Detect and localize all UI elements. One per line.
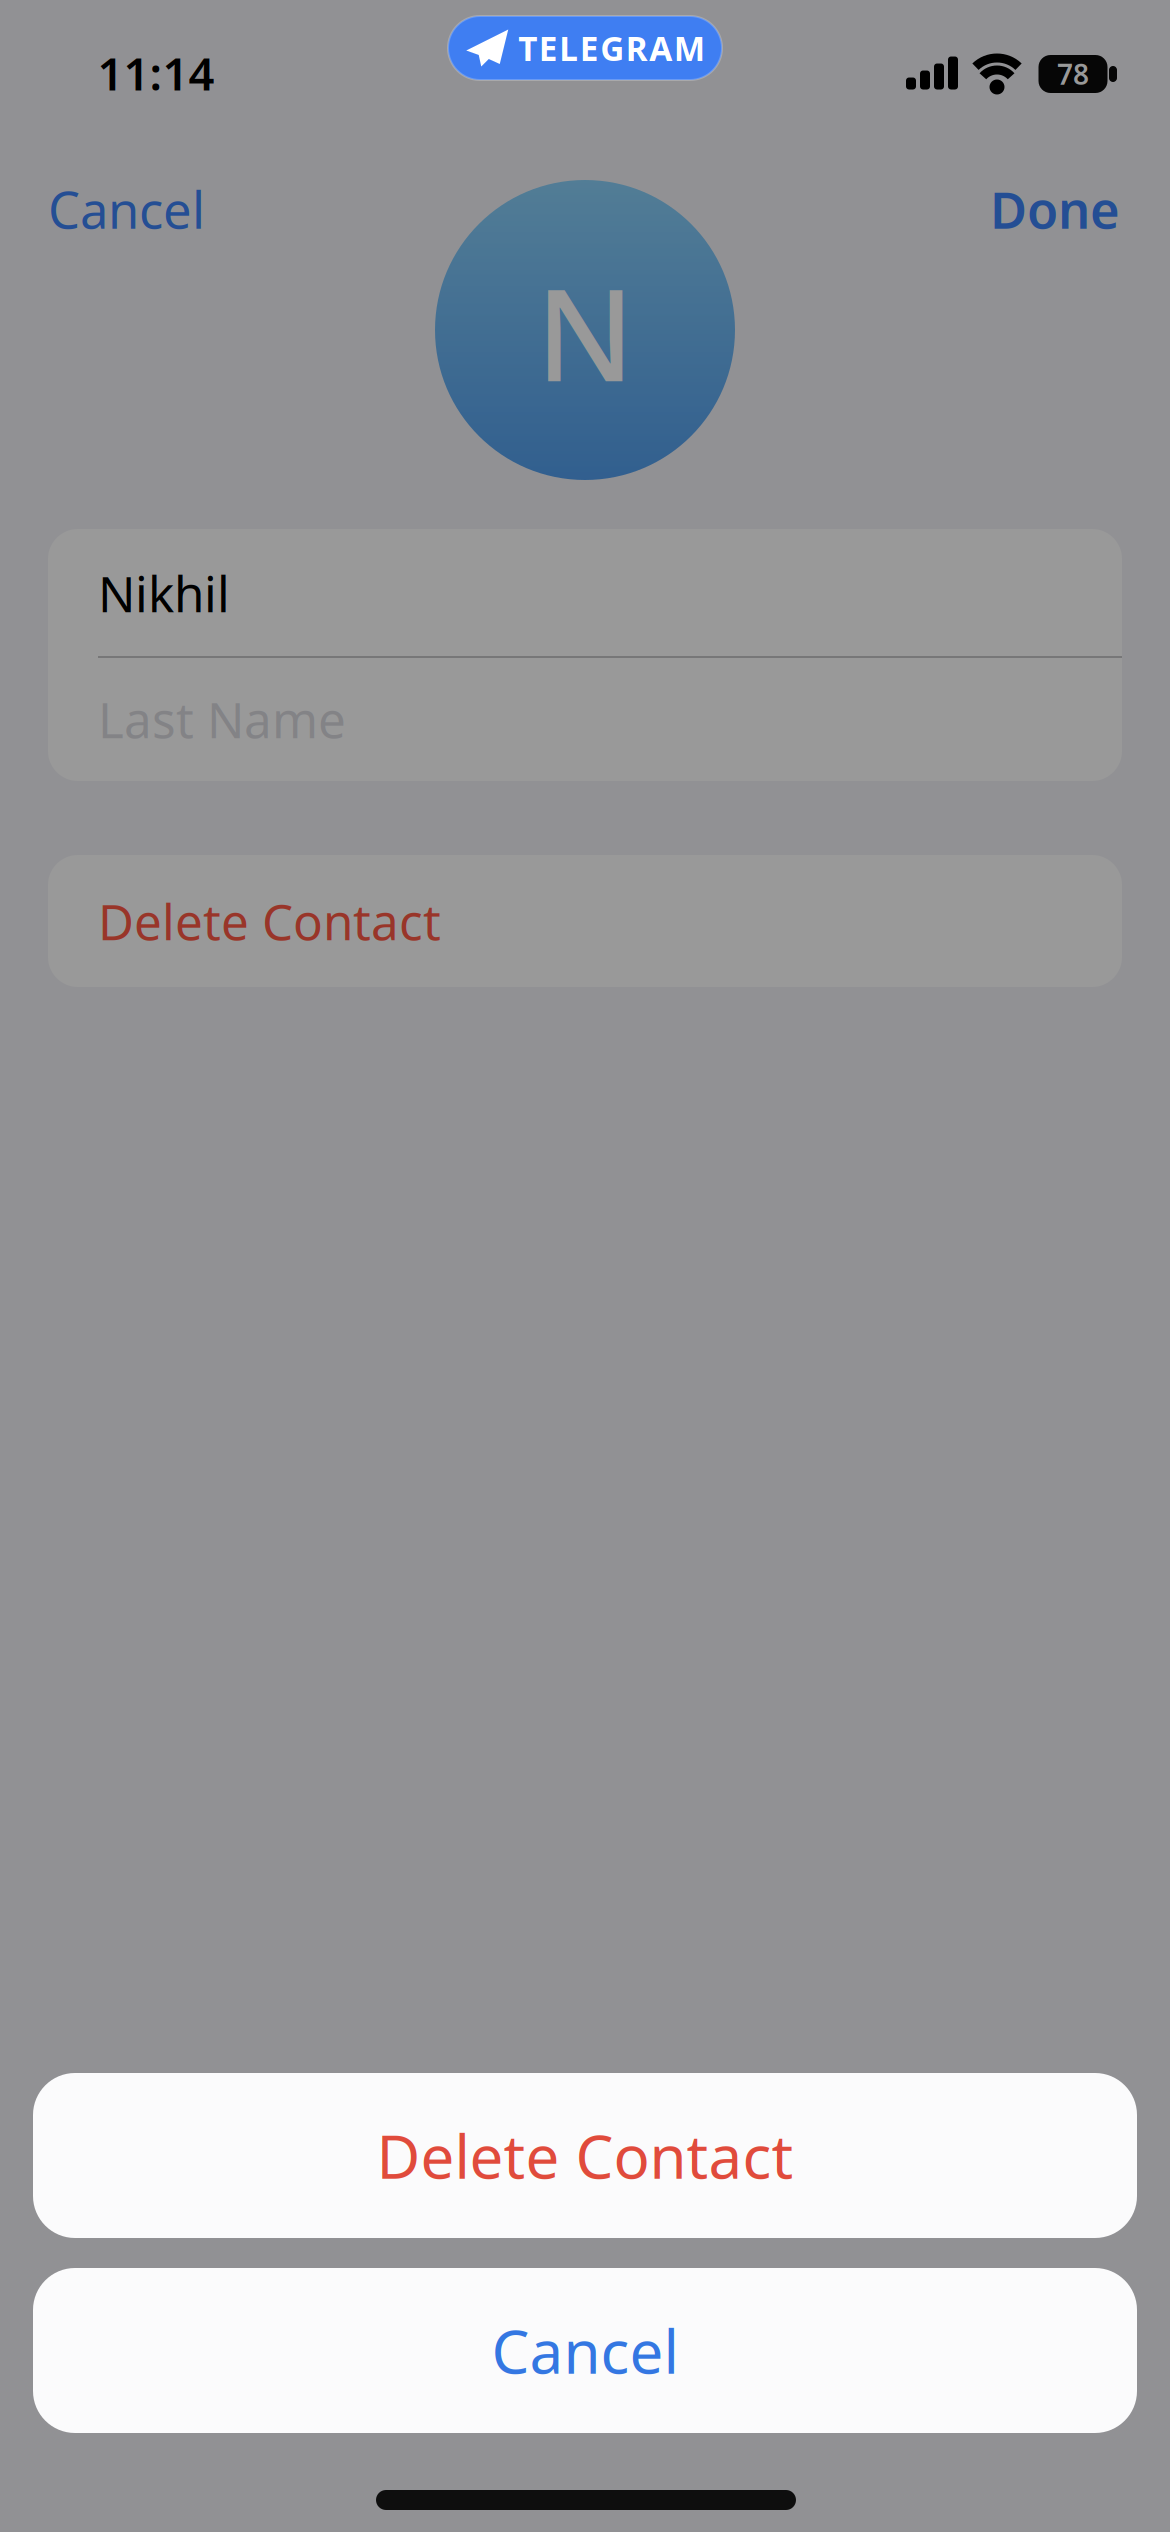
- button[interactable]: TELEGRAM: [448, 16, 722, 80]
- button[interactable]: Done: [720, 177, 1120, 241]
- button[interactable]: Nikhil: [98, 530, 1122, 656]
- button[interactable]: Last Name: [98, 657, 1122, 781]
- staticText: 11:14: [97, 43, 214, 103]
- staticText: TELEGRAM: [518, 26, 705, 70]
- button[interactable]: Cancel: [48, 177, 448, 241]
- button[interactable]: Delete Contact: [48, 855, 1122, 987]
- staticText: 78: [1057, 55, 1089, 93]
- staticText: Done: [990, 175, 1120, 243]
- button[interactable]: Delete Contact: [33, 2073, 1137, 2238]
- staticText: Nikhil: [98, 560, 230, 626]
- staticText: Last Name: [98, 686, 346, 752]
- button[interactable]: Cancel: [33, 2268, 1137, 2433]
- staticText: Delete Contact: [98, 888, 441, 954]
- staticText: Delete Contact: [376, 2116, 793, 2195]
- staticText: Cancel: [48, 175, 205, 243]
- staticText: Cancel: [491, 2311, 678, 2390]
- staticText: N: [536, 248, 634, 416]
